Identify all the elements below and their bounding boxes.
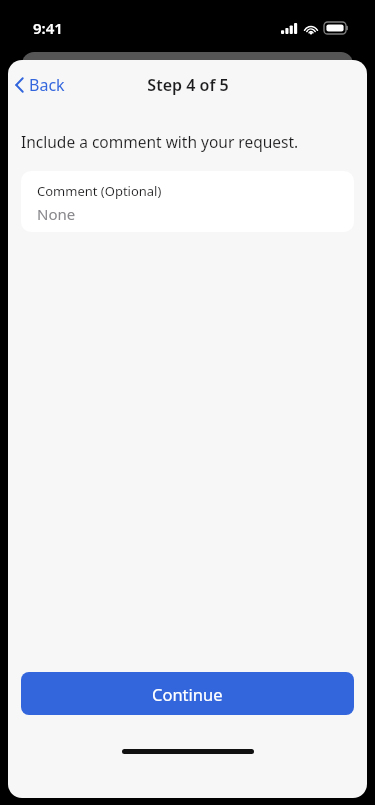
staticText: Include a comment with your request. xyxy=(21,131,299,152)
staticText: Step 4 of 5 xyxy=(147,74,229,96)
staticText: Continue xyxy=(152,683,223,705)
button[interactable]: Comment (Optional) xyxy=(21,171,354,232)
button[interactable]: Back xyxy=(8,68,75,102)
staticText: None xyxy=(37,204,76,224)
staticText: Back xyxy=(29,74,65,96)
staticText: 9:41 xyxy=(33,18,63,38)
staticText: Comment (Optional) xyxy=(37,182,162,200)
button[interactable]: Continue xyxy=(21,672,354,715)
